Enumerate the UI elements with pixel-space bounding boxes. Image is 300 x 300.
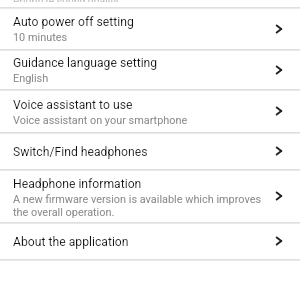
button[interactable]: Switch/Find headphones <box>0 133 300 169</box>
button[interactable]: Voice assistant to use <box>0 90 300 132</box>
button[interactable]: Guidance language setting <box>0 50 300 89</box>
staticText: Headphone information <box>13 177 142 191</box>
staticText: Voice assistant to use <box>13 98 133 112</box>
staticText: About the application <box>13 235 129 249</box>
other: Guidance language setting <box>272 63 286 77</box>
button[interactable]: Prioritize sound quality <box>0 0 300 7</box>
other: Auto power off setting <box>272 22 286 36</box>
staticText: 10 minutes <box>13 31 68 44</box>
staticText: Auto power off setting <box>13 15 134 29</box>
other: Voice assistant to use <box>272 104 286 118</box>
other: Switch/Find headphones <box>272 144 286 158</box>
button[interactable]: Headphone information <box>0 170 300 222</box>
button[interactable]: About the application <box>0 223 300 259</box>
other: About the application <box>272 234 286 248</box>
staticText: Guidance language setting <box>13 56 158 70</box>
staticText: Voice assistant on your smartphone <box>13 114 188 127</box>
other: Headphone information <box>272 189 286 203</box>
button[interactable]: Auto power off setting <box>0 8 300 49</box>
staticText: Prioritize sound quality <box>13 0 119 2</box>
staticText: A new firmware version is available whic… <box>13 193 267 218</box>
staticText: English <box>13 72 49 85</box>
staticText: Switch/Find headphones <box>13 145 148 159</box>
